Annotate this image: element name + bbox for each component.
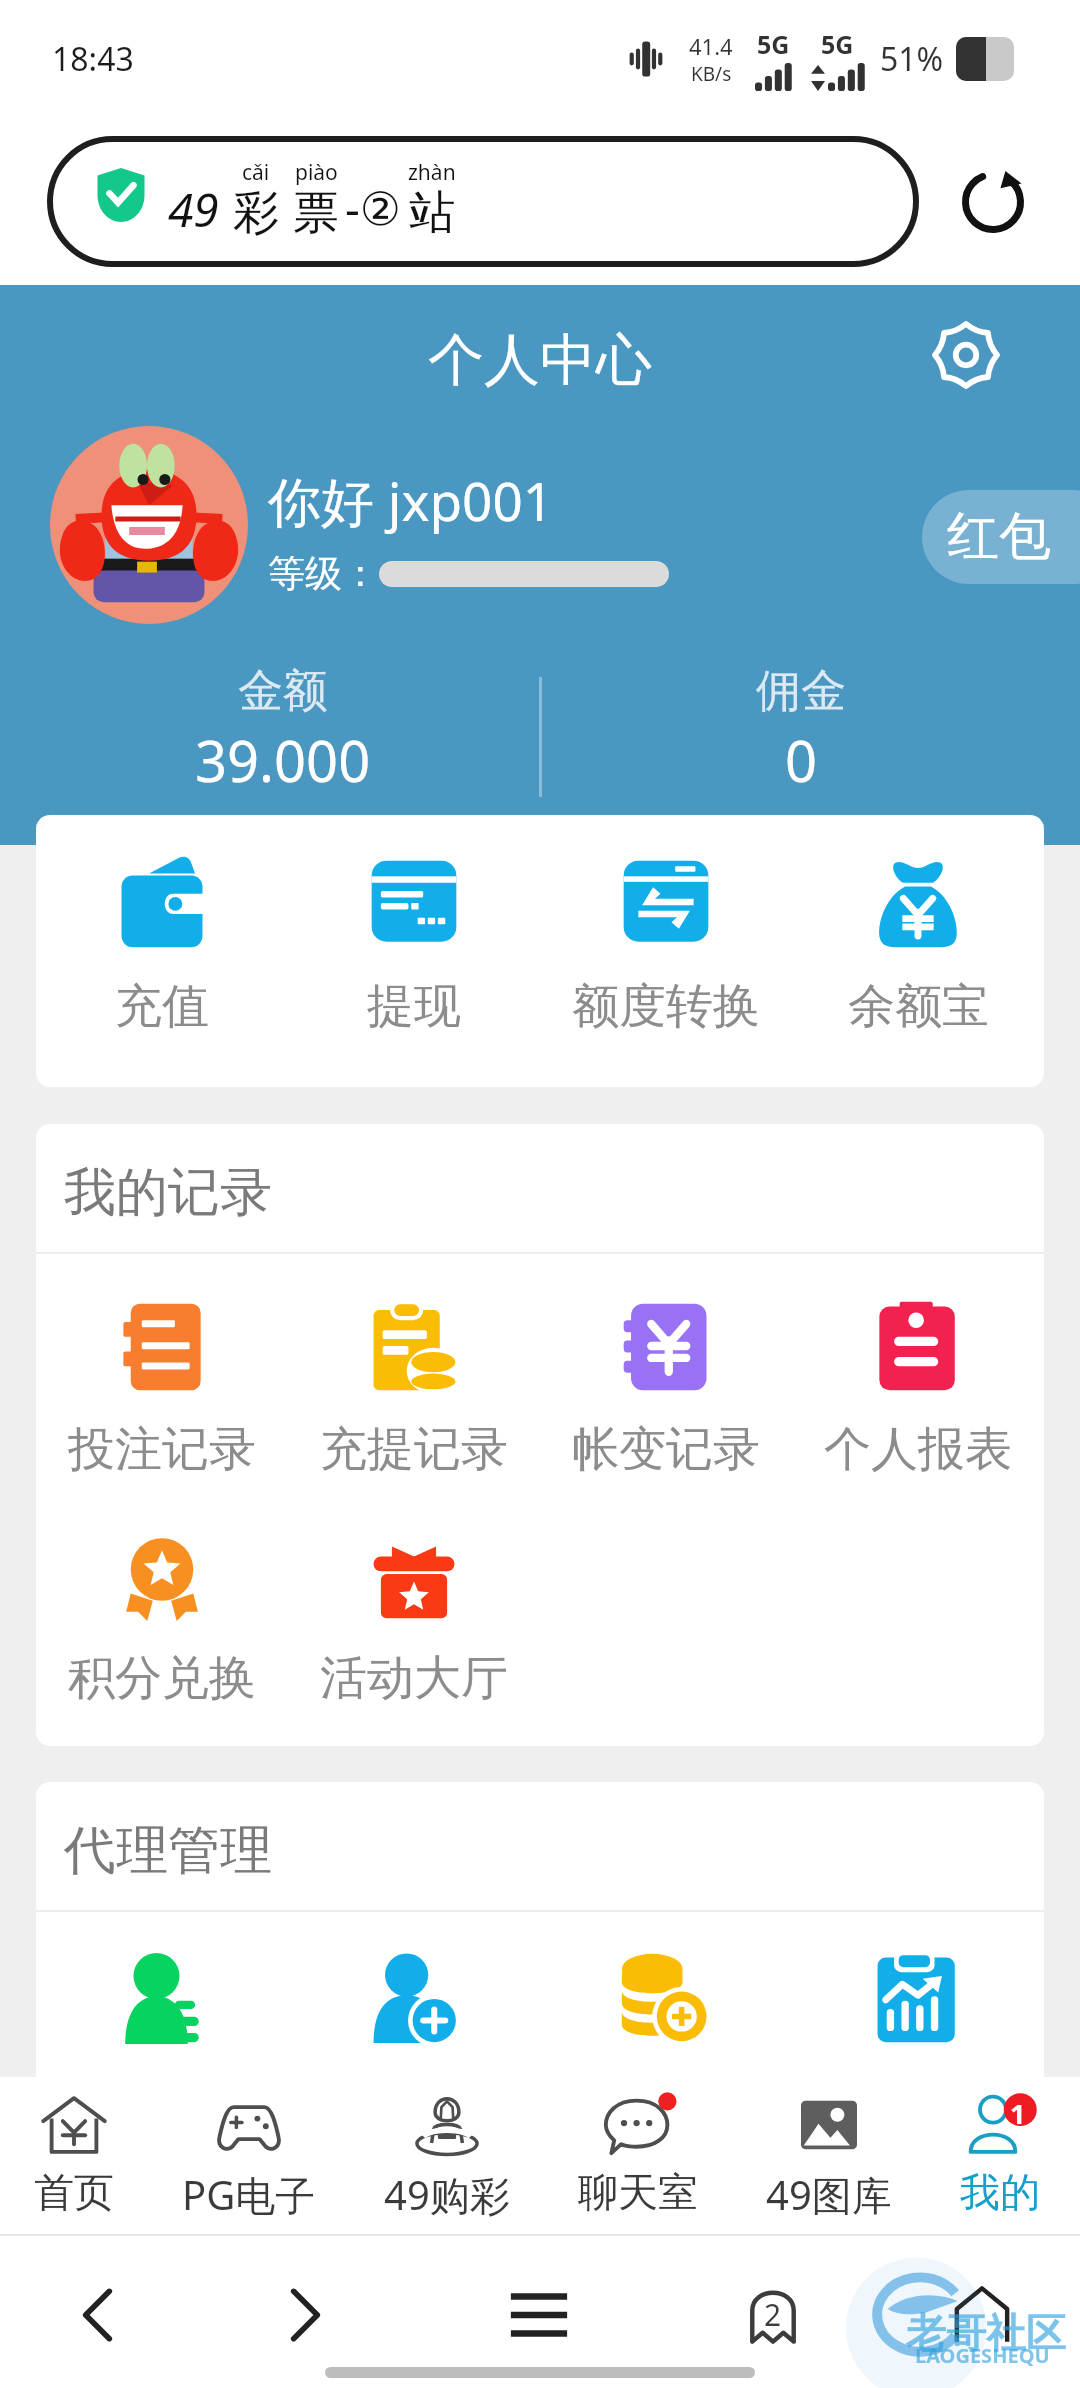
button[interactable]: 个人报表 xyxy=(792,1300,1044,1479)
staticText: 我的记录 xyxy=(64,1160,272,1226)
staticText: LAOGESHEQU xyxy=(915,2342,1050,2369)
staticText: 充提记录 xyxy=(320,1420,508,1479)
button[interactable]: 团队报表 xyxy=(792,1952,1044,2112)
button[interactable]: 活动大厅 xyxy=(288,1529,540,1708)
button[interactable]: Menu xyxy=(502,2278,576,2352)
staticText: 投注记录 xyxy=(68,1420,256,1479)
staticText: 帐变记录 xyxy=(572,1420,760,1479)
staticText: 额度转换 xyxy=(572,977,760,1036)
staticText: 2 xyxy=(764,2294,782,2335)
button[interactable]: 49图库 xyxy=(766,2077,892,2236)
button[interactable]: 首页 xyxy=(34,2077,114,2236)
staticText: 红包 xyxy=(947,504,1051,570)
button[interactable]: 额度转换 xyxy=(540,857,792,1036)
staticText: 个人中心 xyxy=(428,325,652,396)
staticText: 余额宝 xyxy=(848,977,989,1036)
staticText: 等级： xyxy=(268,550,379,597)
staticText: 充值 xyxy=(115,977,209,1036)
staticText: 5G xyxy=(821,27,854,61)
staticText: 提现 xyxy=(367,977,461,1036)
staticText: 个人报表 xyxy=(824,1420,1012,1479)
button[interactable]: 红包 xyxy=(922,490,1080,584)
button[interactable]: 余额宝 xyxy=(792,857,1044,1036)
staticText: 佣金 xyxy=(756,663,846,720)
button[interactable]: Back xyxy=(62,2278,136,2352)
button[interactable]: 代理充值 xyxy=(540,1952,792,2112)
staticText: -② xyxy=(345,176,402,239)
staticText: 开户中心 xyxy=(320,2072,508,2112)
staticText: 5G xyxy=(757,27,790,61)
staticText: 代理充值 xyxy=(572,2072,760,2112)
staticText: piào xyxy=(295,158,338,187)
button[interactable]: 聊天室 xyxy=(578,2077,698,2236)
button[interactable]: 充值 xyxy=(36,857,288,1036)
staticText: PG电子 xyxy=(182,2167,316,2222)
staticText: 站 xyxy=(409,184,455,242)
staticText: 老哥社区 xyxy=(906,2308,1066,2358)
staticText: 活动大厅 xyxy=(320,1649,508,1708)
staticText: 41.4 xyxy=(689,31,733,61)
staticText: KB/s xyxy=(691,61,732,87)
staticText: 51% xyxy=(880,37,944,81)
staticText: zhàn xyxy=(408,158,456,187)
button[interactable]: 充提记录 xyxy=(288,1300,540,1479)
button[interactable]: 帐变记录 xyxy=(540,1300,792,1479)
staticText: 票 xyxy=(293,184,339,242)
staticText: 18:43 xyxy=(52,37,134,81)
staticText: 聊天室 xyxy=(578,2167,698,2217)
button[interactable]: Refresh xyxy=(948,157,1038,247)
staticText: 彩 xyxy=(233,184,279,242)
staticText: 0 xyxy=(785,722,818,798)
staticText: 我的 xyxy=(960,2167,1040,2217)
staticText: 你好 jxp001 xyxy=(268,464,554,536)
staticText: 下级列表 xyxy=(68,2072,256,2112)
staticText: 积分兑换 xyxy=(68,1649,256,1708)
staticText: 代理管理 xyxy=(64,1818,272,1884)
staticText: 39.000 xyxy=(195,722,371,798)
button[interactable]: Home xyxy=(945,2278,1019,2352)
button[interactable]: Tabs xyxy=(736,2278,810,2352)
button[interactable]: 下级列表 xyxy=(36,1952,288,2112)
button[interactable]: PG电子 xyxy=(182,2077,316,2236)
button[interactable]: 1 xyxy=(960,2077,1040,2236)
staticText: 团队报表 xyxy=(824,2072,1012,2112)
button[interactable]: 49购彩 xyxy=(384,2077,510,2236)
staticText: 1 xyxy=(1010,2095,1026,2132)
button[interactable]: 开户中心 xyxy=(288,1952,540,2112)
staticText: cǎi xyxy=(242,158,270,187)
button[interactable]: Settings xyxy=(924,318,1008,402)
button[interactable]: 提现 xyxy=(288,857,540,1036)
button[interactable]: 49 xyxy=(47,136,919,267)
staticText: 49图库 xyxy=(766,2167,892,2222)
button[interactable]: 投注记录 xyxy=(36,1300,288,1479)
staticText: 首页 xyxy=(34,2167,114,2217)
button[interactable]: 积分兑换 xyxy=(36,1529,288,1708)
staticText: 49 xyxy=(168,178,219,241)
staticText: 49购彩 xyxy=(384,2167,510,2222)
button[interactable]: Forward xyxy=(267,2278,341,2352)
staticText: 金额 xyxy=(238,663,328,720)
